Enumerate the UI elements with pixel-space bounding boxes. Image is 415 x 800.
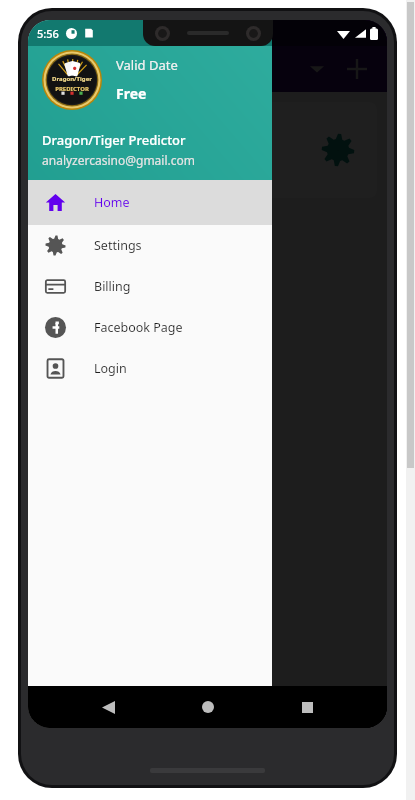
button[interactable]: Facebook Page: [28, 307, 272, 348]
staticText: PREDICTOR: [55, 85, 89, 93]
button[interactable]: Add: [337, 49, 377, 89]
staticText: Dragon/Tiger: [52, 75, 92, 83]
button[interactable]: Recents: [287, 687, 327, 727]
button[interactable]: Home: [188, 687, 228, 727]
staticText: Login: [94, 360, 127, 377]
button[interactable]: Back: [88, 687, 128, 727]
staticText: Facebook Page: [94, 319, 183, 336]
staticText: Valid Date: [116, 56, 178, 74]
staticText: Billing: [94, 278, 131, 295]
staticText: Dragon/Tiger Predictor: [42, 131, 186, 149]
button[interactable]: Settings: [28, 225, 272, 266]
button[interactable]: Billing: [28, 266, 272, 307]
button[interactable]: Home: [28, 180, 272, 225]
staticText: analyzercasino@gmail.com: [42, 152, 196, 168]
button[interactable]: Dropdown: [297, 49, 337, 89]
button[interactable]: [38, 102, 377, 198]
staticText: Settings: [94, 237, 142, 254]
staticText: Free: [116, 84, 147, 103]
button[interactable]: Login: [28, 348, 272, 389]
staticText: 5:56: [37, 26, 59, 41]
staticText: Home: [94, 194, 130, 211]
